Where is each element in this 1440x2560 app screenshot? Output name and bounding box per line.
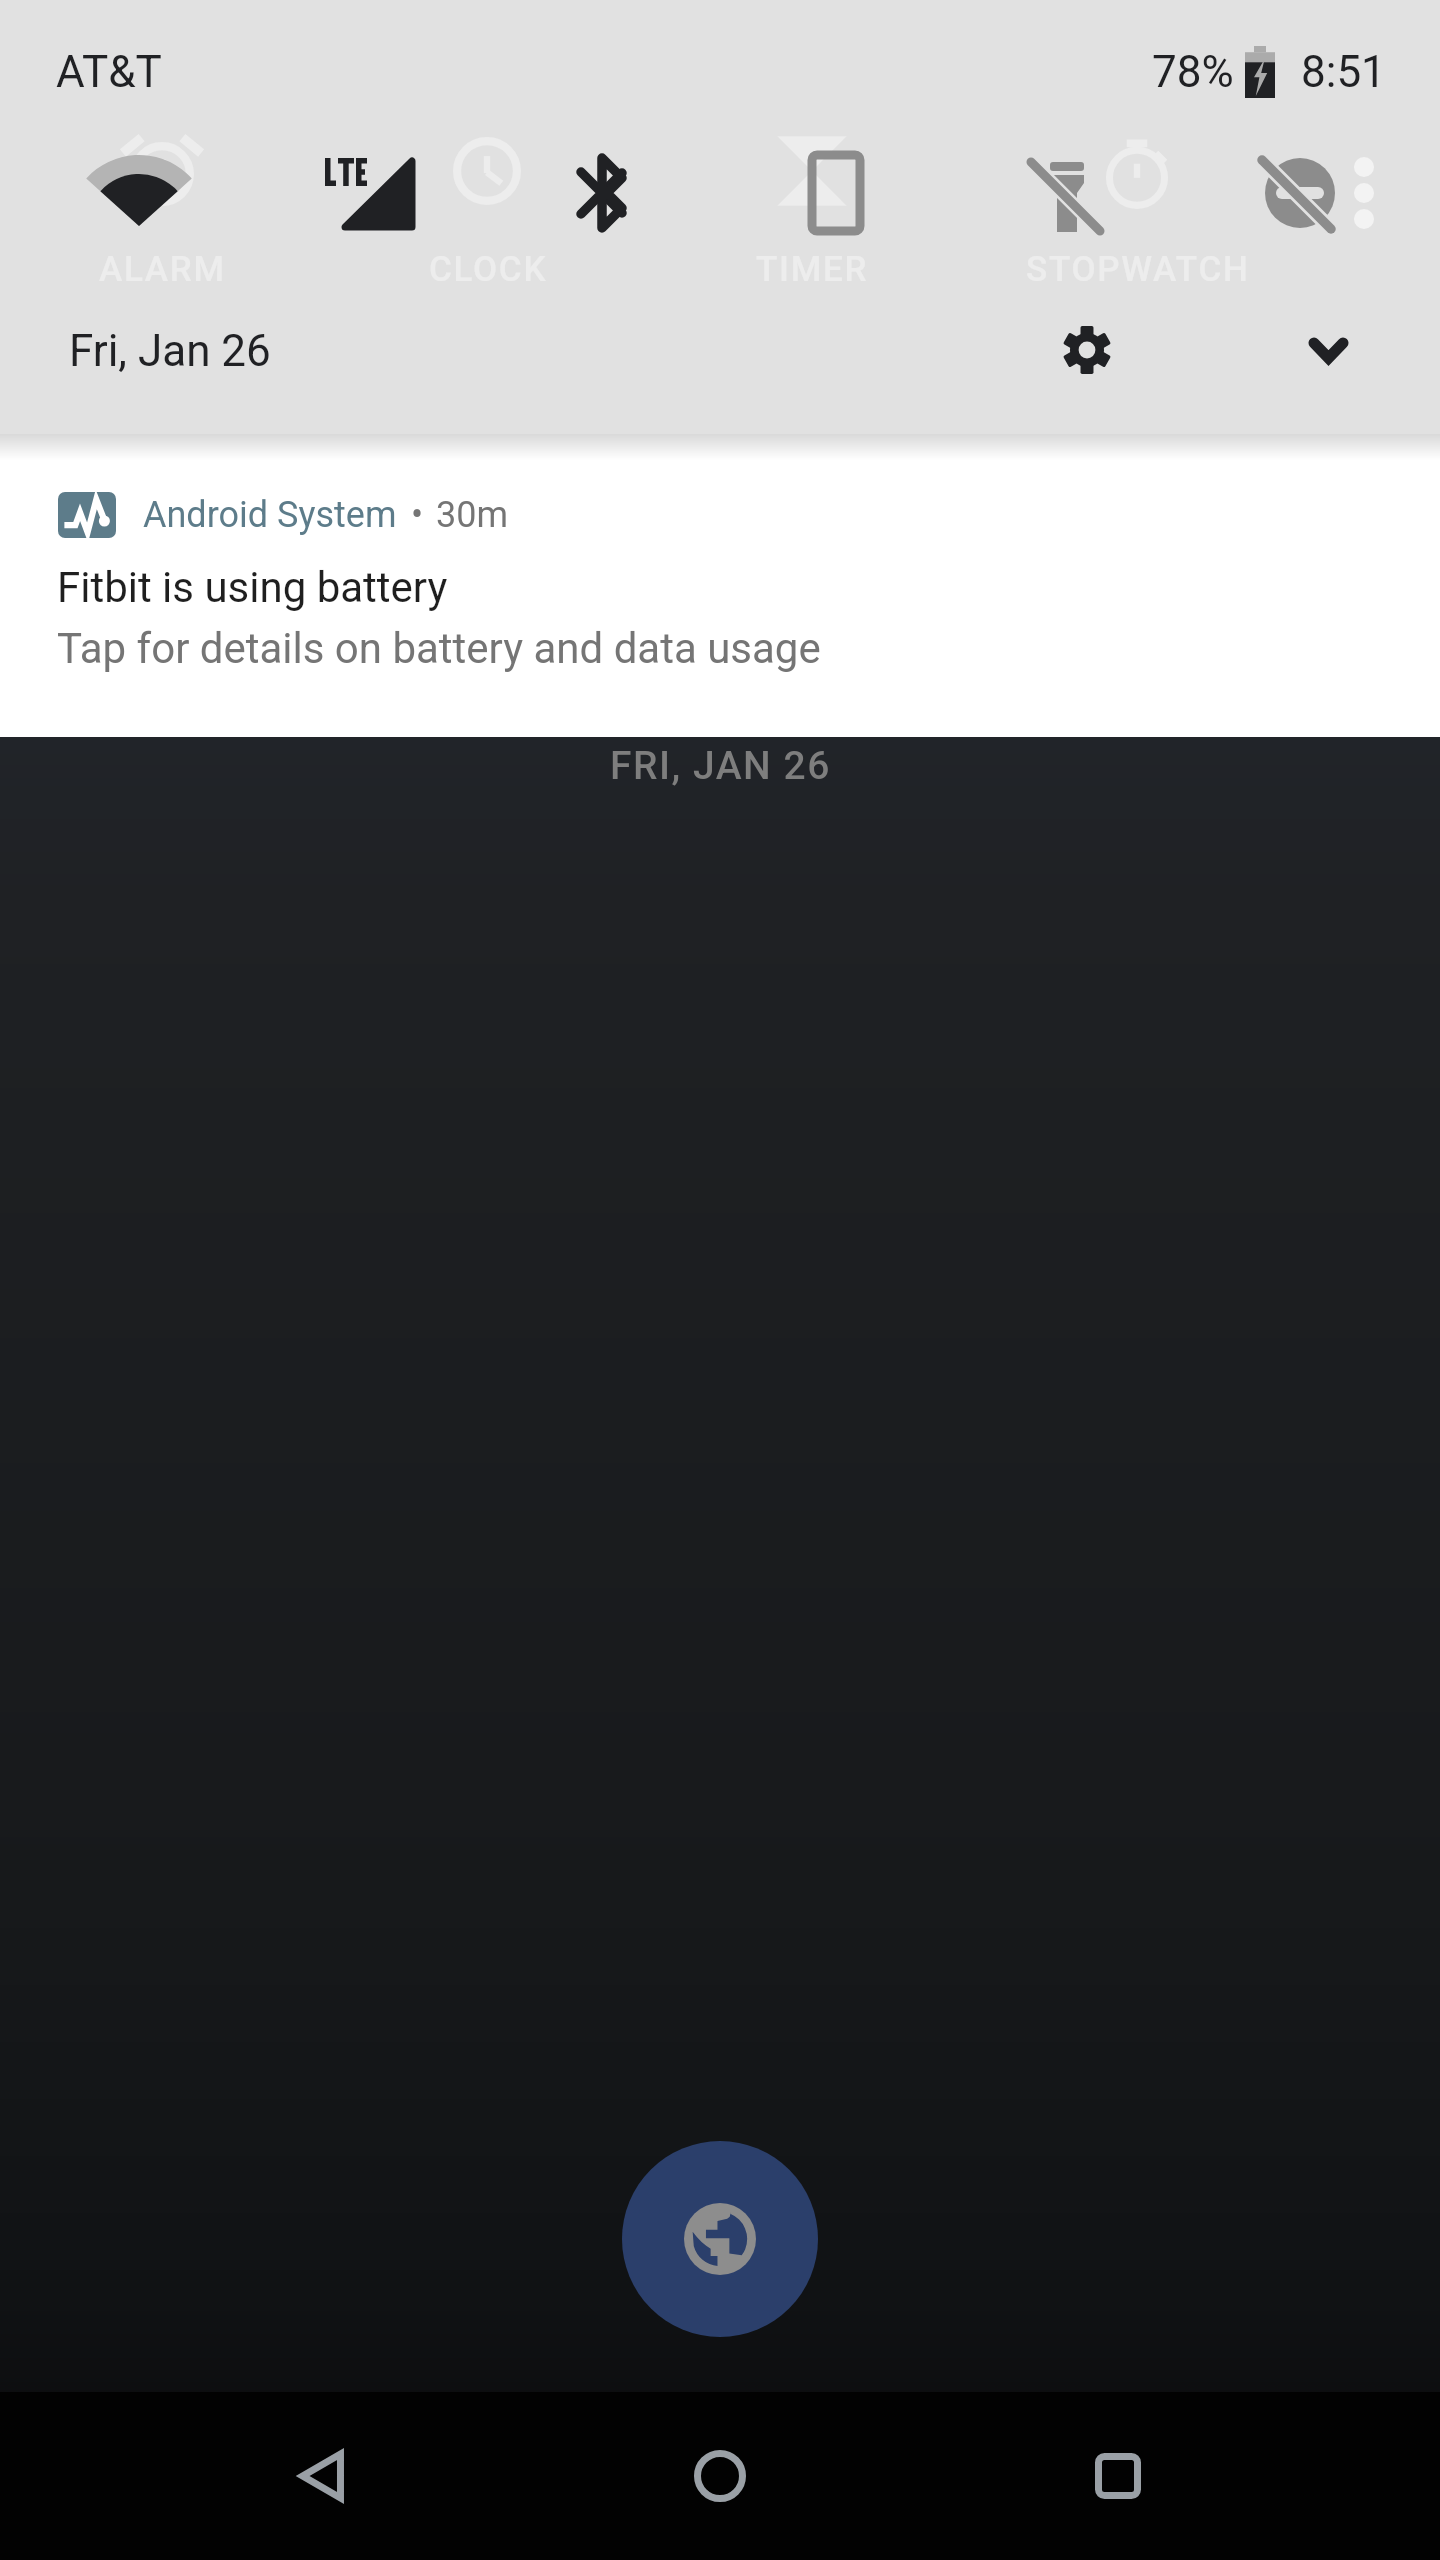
staticText: TIMER [756, 249, 869, 290]
staticText: 30m [436, 494, 509, 536]
button[interactable]: Home [656, 2392, 784, 2560]
button[interactable]: Android System [0, 434, 1440, 737]
staticText: 8:51 [1301, 46, 1386, 98]
button[interactable]: Settings [1027, 290, 1147, 410]
staticText: 78% [1152, 46, 1234, 98]
staticText: STOPWATCH [1026, 249, 1250, 290]
button[interactable]: Add city [622, 2141, 818, 2337]
staticText: Fitbit is using battery [57, 563, 448, 612]
staticText: Tap for details on battery and data usag… [57, 624, 821, 673]
staticText: Fri, Jan 26 [69, 325, 271, 377]
staticText: Android System [143, 494, 397, 536]
staticText: ALARM [99, 249, 226, 290]
button[interactable]: Expand [1268, 290, 1388, 410]
staticText: • [411, 494, 424, 536]
staticText: CLOCK [429, 249, 548, 290]
staticText: AT&T [56, 46, 162, 98]
button[interactable]: Back [258, 2392, 386, 2560]
staticText: FRI, JAN 26 [610, 743, 831, 789]
button[interactable]: Recents [1054, 2392, 1182, 2560]
